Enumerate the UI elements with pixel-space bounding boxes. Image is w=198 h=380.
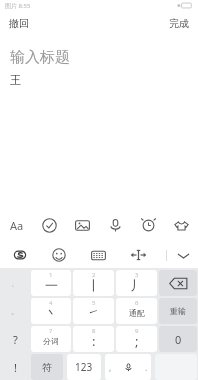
staticText: ? [13,332,18,347]
staticText: 8 [92,327,96,335]
staticText: ! [14,360,17,375]
button[interactable]: 5 [73,298,114,324]
staticText: 9 [135,327,139,335]
staticText: . [145,361,148,373]
button[interactable]: Reminder [132,208,165,242]
button[interactable]: ! [0,354,30,380]
button[interactable]: Insert image [66,208,99,242]
button[interactable]: Input method [0,242,39,268]
button[interactable]: 撤回 [0,11,38,35]
staticText: ; [135,332,139,350]
staticText: 图片 8:55 [5,2,31,10]
staticText: 丶 [45,305,58,321]
staticText: , [109,361,112,373]
button[interactable]: 重输 [159,298,197,324]
button[interactable]: , [105,354,151,380]
staticText: 撤回 [9,17,29,30]
staticText: 2 [92,271,96,279]
button[interactable]: 9 [116,326,157,352]
button[interactable]: Text format [0,208,33,242]
staticText: : [92,332,96,350]
staticText: 7 [49,327,53,335]
staticText: 完成 [169,17,189,30]
staticText: 丿 [130,277,143,293]
button[interactable]: 7 [31,326,71,352]
button[interactable]: 1 [31,270,71,296]
staticText: ㇀ [87,305,100,321]
button[interactable]: 8 [73,326,114,352]
staticText: 6 [135,299,139,307]
staticText: 3 [135,271,139,279]
staticText: 。 [11,306,19,316]
button[interactable]: Keyboard layout [78,242,118,268]
button[interactable]: Hide keyboard [158,242,198,268]
staticText: 一 [45,277,58,293]
staticText: 123 [75,360,93,374]
staticText: 4 [49,299,53,307]
staticText: 通配 [129,308,145,318]
button[interactable]: 4 [31,298,71,324]
staticText: 丨 [87,277,100,293]
button[interactable]: Move cursor [118,242,158,268]
staticText: 分词 [43,336,59,346]
staticText: Aa [10,218,24,233]
button[interactable]: 3 [116,270,157,296]
staticText: 王 [10,73,21,87]
button[interactable]: 123 [67,354,101,380]
button[interactable]: Voice input [99,208,132,242]
staticText: 符 [42,361,52,374]
button[interactable]: 符 [31,354,63,380]
button[interactable]: 完成 [160,11,198,35]
button[interactable]: 6 [116,298,157,324]
button[interactable] [159,270,197,296]
button[interactable]: 0 [159,326,197,352]
button[interactable]: Emoji [39,242,78,268]
button[interactable]: 2 [73,270,114,296]
button[interactable]: Checklist [33,208,66,242]
staticText: 输入标题 [10,48,70,67]
staticText: 、 [11,278,19,288]
staticText: 重输 [170,306,186,316]
button[interactable]: Template [165,208,198,242]
staticText: 0 [175,332,182,347]
button[interactable]: ? [0,326,30,352]
staticText: 5 [92,299,96,307]
staticText: 1 [49,271,53,279]
